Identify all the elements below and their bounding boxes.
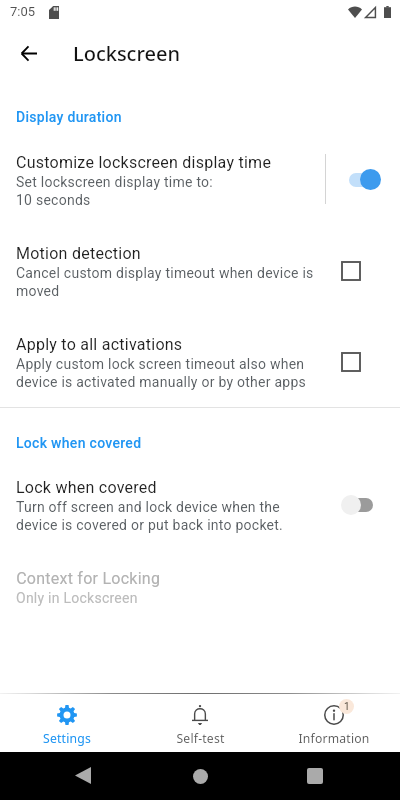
- button[interactable]: Customize lockscreen display time: [0, 143, 400, 215]
- staticText: Lock when covered: [16, 478, 157, 497]
- button[interactable]: Home: [178, 754, 222, 798]
- staticText: Apply custom lock screen timeout also wh…: [16, 356, 321, 390]
- staticText: Self-test: [176, 730, 225, 747]
- button[interactable]: Apply to all activations: [0, 325, 400, 397]
- staticText: Lock when covered: [16, 435, 142, 451]
- staticText: 1: [344, 701, 350, 713]
- button[interactable]: Motion detection: [0, 234, 400, 306]
- button[interactable]: Checkbox, unchecked: [342, 353, 360, 371]
- staticText: Motion detection: [16, 244, 141, 263]
- button[interactable]: Self-test: [156, 693, 244, 752]
- button[interactable]: Lock when covered switch, off: [340, 493, 380, 517]
- staticText: Apply to all activations: [16, 335, 183, 354]
- button[interactable]: Checkbox, unchecked: [342, 262, 360, 280]
- staticText: Settings: [43, 730, 91, 747]
- staticText: Set lockscreen display time to: 10 secon…: [16, 174, 213, 208]
- staticText: Context for Locking: [16, 569, 160, 588]
- button[interactable]: Customize lockscreen display time switch…: [344, 168, 384, 192]
- button[interactable]: Recent apps: [293, 754, 337, 798]
- staticText: Display duration: [16, 109, 122, 125]
- staticText: 7:05: [10, 4, 36, 19]
- button[interactable]: Back: [61, 753, 105, 797]
- button[interactable]: Lock when covered: [0, 468, 400, 540]
- button[interactable]: 1: [290, 693, 378, 752]
- staticText: Turn off screen and lock device when the…: [16, 499, 306, 533]
- staticText: Only in Lockscreen: [16, 590, 138, 606]
- button[interactable]: Settings: [23, 693, 111, 752]
- staticText: Cancel custom display timeout when devic…: [16, 265, 316, 299]
- staticText: Lockscreen: [73, 40, 180, 67]
- staticText: Information: [298, 730, 370, 747]
- staticText: Customize lockscreen display time: [16, 153, 272, 172]
- button[interactable]: Context for Locking: [0, 559, 400, 615]
- button[interactable]: Back: [9, 33, 49, 73]
